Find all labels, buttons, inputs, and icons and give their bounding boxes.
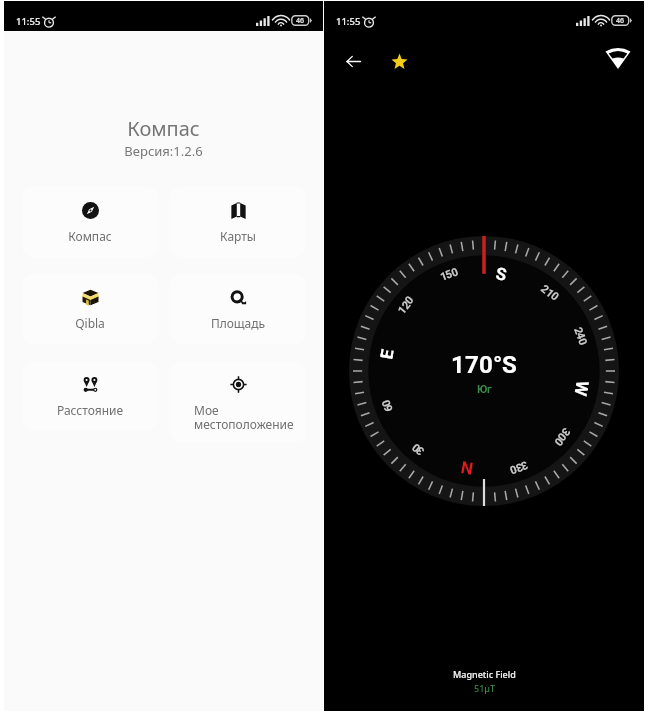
staticText: Площадь [178,315,298,331]
staticText: Компас [30,228,150,244]
staticText: 46 [616,16,625,26]
staticText: Qibla [30,315,150,331]
button[interactable]: Мое местоположение [170,361,306,442]
staticText: 46 [296,16,305,26]
staticText: 51µT [474,682,496,694]
button[interactable]: Sensor accuracy [597,37,639,79]
button[interactable]: Карты [170,187,306,257]
staticText: Компас [4,115,323,142]
staticText: Мое местоположение [194,402,298,432]
button[interactable]: Qibla [22,274,158,344]
button[interactable]: Favorite [380,42,418,80]
staticText: Карты [178,228,298,244]
button[interactable]: Компас [22,187,158,257]
button[interactable]: Back [333,41,373,81]
staticText: 11:55 [336,15,361,28]
staticText: Расстояние [30,402,150,418]
button[interactable]: Расстояние [22,361,158,431]
staticText: Magnetic Field [453,668,516,680]
staticText: 11:55 [16,15,41,28]
staticText: Версия:1.2.6 [4,142,323,160]
button[interactable]: Площадь [170,274,306,344]
